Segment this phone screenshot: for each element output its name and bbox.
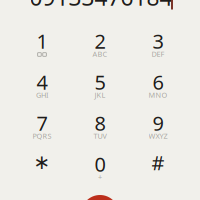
staticText: PQRS xyxy=(32,131,51,141)
staticText: TUV xyxy=(93,131,106,141)
staticText: 3 xyxy=(152,27,163,55)
staticText: 1 xyxy=(36,27,47,55)
staticText: MNO xyxy=(148,90,167,100)
staticText: ABC xyxy=(92,49,107,59)
staticText: WXYZ xyxy=(148,131,167,141)
staticText: # xyxy=(151,149,164,176)
button[interactable]: 4 xyxy=(15,68,69,108)
button[interactable]: 8 xyxy=(73,109,127,149)
button[interactable]: 6 xyxy=(131,68,185,108)
button[interactable]: 1 xyxy=(15,27,69,67)
button[interactable]: 7 xyxy=(15,109,69,149)
button[interactable]: 3 xyxy=(131,27,185,67)
staticText: GHI xyxy=(36,90,48,100)
staticText: 09133476184 xyxy=(29,0,172,12)
staticText: 7 xyxy=(36,109,47,137)
staticText: 4 xyxy=(36,68,47,96)
staticText: + xyxy=(98,172,102,182)
staticText: 8 xyxy=(94,109,105,137)
staticText: 6 xyxy=(152,68,163,96)
staticText: DEF xyxy=(151,49,164,59)
button[interactable]: Call xyxy=(81,195,119,200)
staticText: 0 xyxy=(94,150,105,178)
staticText: 5 xyxy=(94,68,105,96)
staticText: ∗ xyxy=(33,150,50,174)
staticText: 2 xyxy=(94,27,105,55)
button[interactable]: Pound xyxy=(131,150,185,190)
button[interactable]: Star xyxy=(15,150,69,190)
button[interactable]: 2 xyxy=(73,27,127,67)
button[interactable]: 0 xyxy=(73,150,127,190)
staticText: JKL xyxy=(94,90,105,100)
button[interactable]: 5 xyxy=(73,68,127,108)
staticText: 9 xyxy=(152,109,163,137)
button[interactable]: 9 xyxy=(131,109,185,149)
